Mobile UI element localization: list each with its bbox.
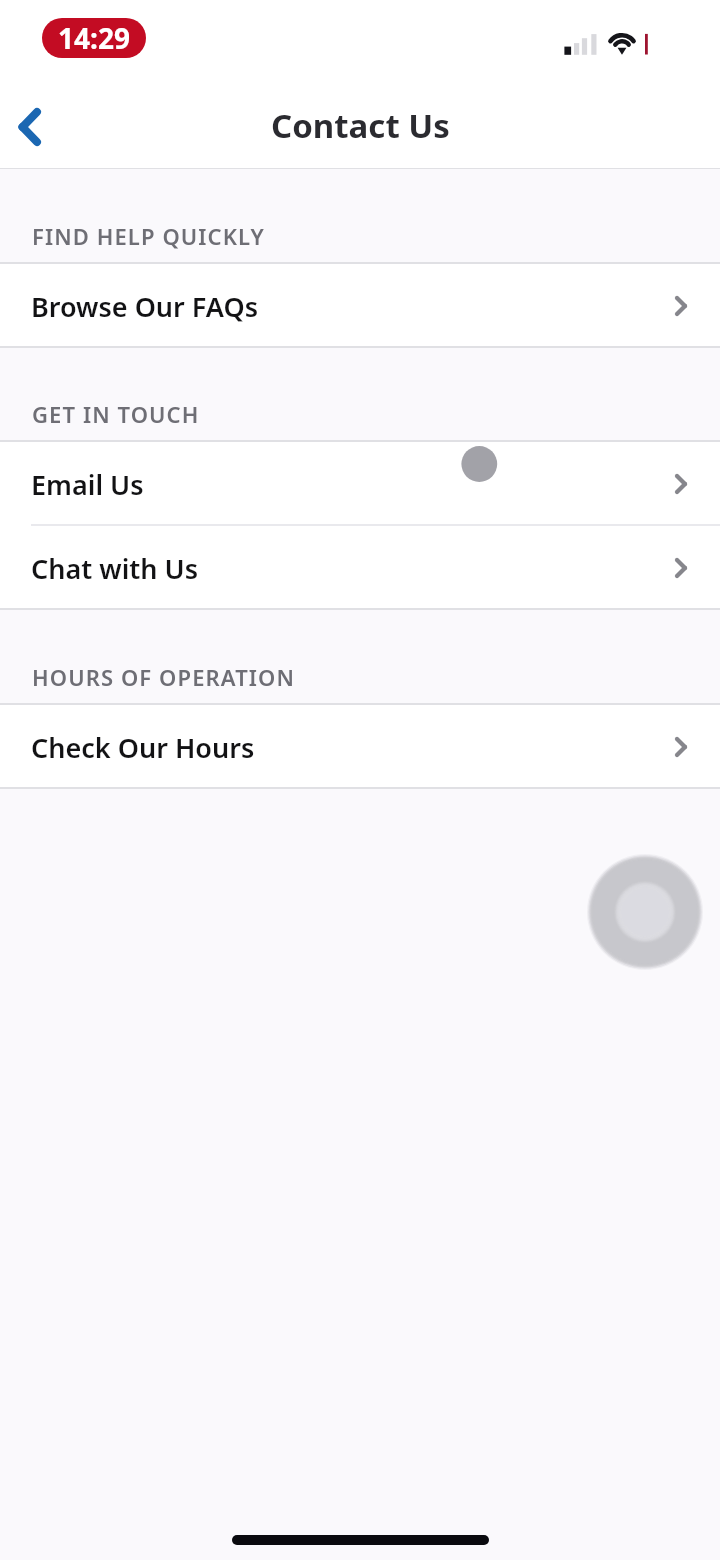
staticText: Email Us (31, 466, 144, 503)
staticText: 14:29 (58, 19, 130, 57)
staticText: Chat with Us (31, 550, 198, 587)
staticText: Contact Us (271, 103, 450, 148)
staticText: Check Our Hours (31, 729, 255, 766)
staticText: Browse Our FAQs (31, 288, 258, 325)
button[interactable]: Check Our Hours (0, 705, 720, 789)
button[interactable]: Browse Our FAQs (0, 264, 720, 348)
staticText: FIND HELP QUICKLY (32, 221, 265, 251)
button[interactable]: Back (0, 85, 80, 169)
staticText: HOURS OF OPERATION (32, 662, 295, 692)
staticText: GET IN TOUCH (32, 399, 200, 429)
button[interactable]: Email Us (0, 442, 720, 526)
button[interactable]: Chat with Us (0, 526, 720, 610)
